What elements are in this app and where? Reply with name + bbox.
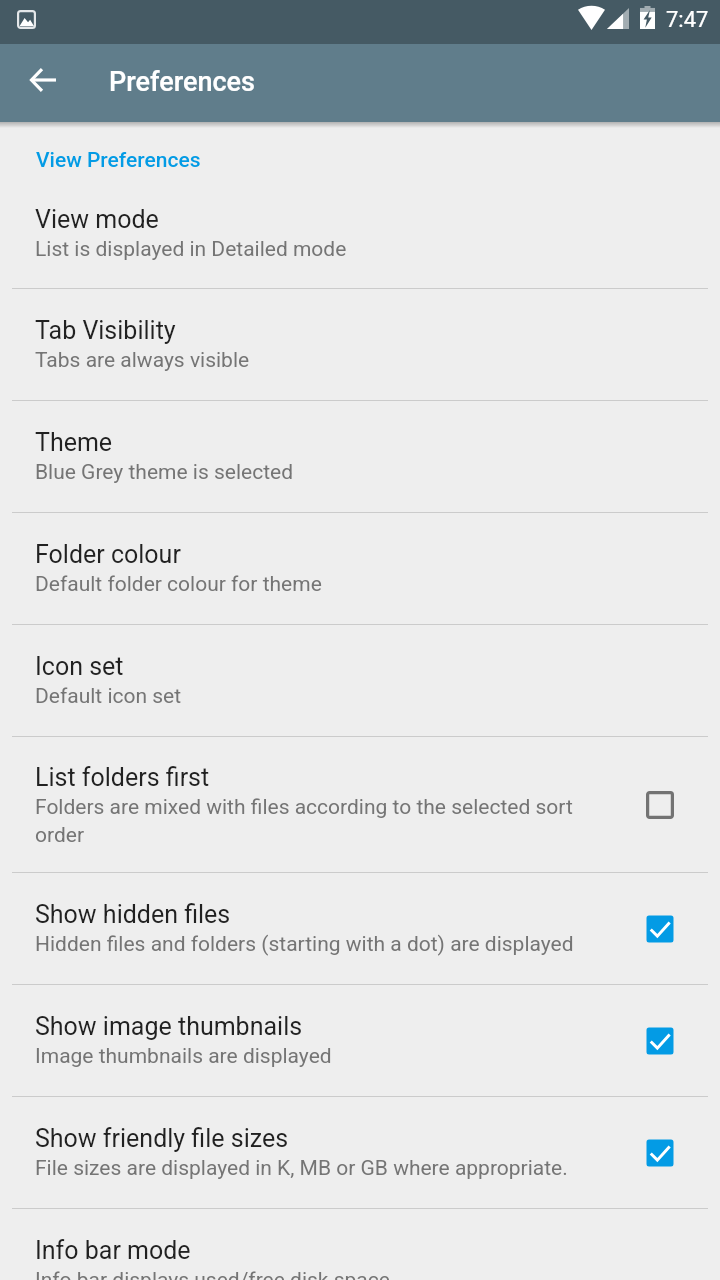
button[interactable]: List folders first: [0, 737, 720, 872]
button[interactable]: Show friendly file sizes: [0, 1097, 720, 1208]
staticText: Tabs are always visible: [35, 348, 250, 373]
staticText: Folders are mixed with files according t…: [35, 795, 601, 847]
staticText: Show hidden files: [35, 900, 231, 929]
button[interactable]: Theme: [0, 401, 720, 512]
staticText: Info bar displays used/free disk space: [35, 1268, 390, 1280]
staticText: Show friendly file sizes: [35, 1124, 289, 1153]
button[interactable]: View mode: [0, 178, 720, 288]
staticText: Hidden files and folders (starting with …: [35, 932, 574, 957]
staticText: List is displayed in Detailed mode: [35, 237, 347, 262]
button[interactable]: Info bar mode: [0, 1209, 720, 1280]
button[interactable]: Folder colour: [0, 513, 720, 624]
staticText: Image thumbnails are displayed: [35, 1044, 332, 1069]
staticText: Preferences: [109, 66, 255, 98]
staticText: Theme: [35, 428, 113, 457]
staticText: Folder colour: [35, 540, 181, 569]
button[interactable]: Show hidden files: [0, 873, 720, 984]
staticText: Default folder colour for theme: [35, 572, 322, 597]
staticText: Blue Grey theme is selected: [35, 460, 294, 485]
staticText: 7:47: [666, 7, 709, 33]
staticText: Info bar mode: [35, 1236, 191, 1265]
staticText: View Preferences: [36, 148, 201, 173]
button[interactable]: Tab Visibility: [0, 289, 720, 400]
staticText: View mode: [35, 205, 159, 234]
button[interactable]: Back: [14, 52, 70, 108]
staticText: Show image thumbnails: [35, 1012, 303, 1041]
button[interactable]: Show image thumbnails: [0, 985, 720, 1096]
staticText: File sizes are displayed in K, MB or GB …: [35, 1156, 568, 1181]
staticText: Default icon set: [35, 684, 182, 709]
staticText: Icon set: [35, 652, 124, 681]
staticText: Tab Visibility: [35, 316, 176, 345]
other: Screenshot captured: [17, 10, 36, 29]
button[interactable]: Icon set: [0, 625, 720, 736]
staticText: List folders first: [35, 763, 210, 792]
